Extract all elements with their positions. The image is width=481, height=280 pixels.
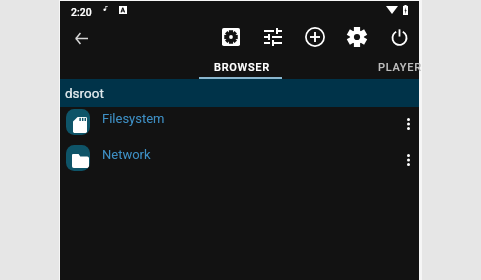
button[interactable]: Dark mode [210, 20, 252, 54]
button[interactable]: BROWSER [163, 56, 321, 79]
button[interactable]: Back [59, 22, 103, 56]
button[interactable]: More options [398, 107, 419, 143]
staticText: Network [102, 147, 151, 162]
staticText: PLAYER [378, 61, 422, 74]
button[interactable]: Filesystem [60, 107, 419, 143]
button[interactable]: Add [294, 20, 336, 54]
button[interactable]: More options [398, 143, 419, 179]
button[interactable]: PLAYER [321, 56, 479, 79]
button[interactable]: Network [60, 143, 419, 179]
staticText: dsroot [65, 85, 104, 101]
button[interactable]: Equalizer [252, 20, 294, 54]
staticText: BROWSER [214, 61, 270, 74]
button[interactable]: Power [378, 20, 420, 54]
staticText: 2:20 [71, 6, 92, 18]
button[interactable]: Settings [336, 20, 378, 54]
staticText: Filesystem [102, 111, 165, 126]
